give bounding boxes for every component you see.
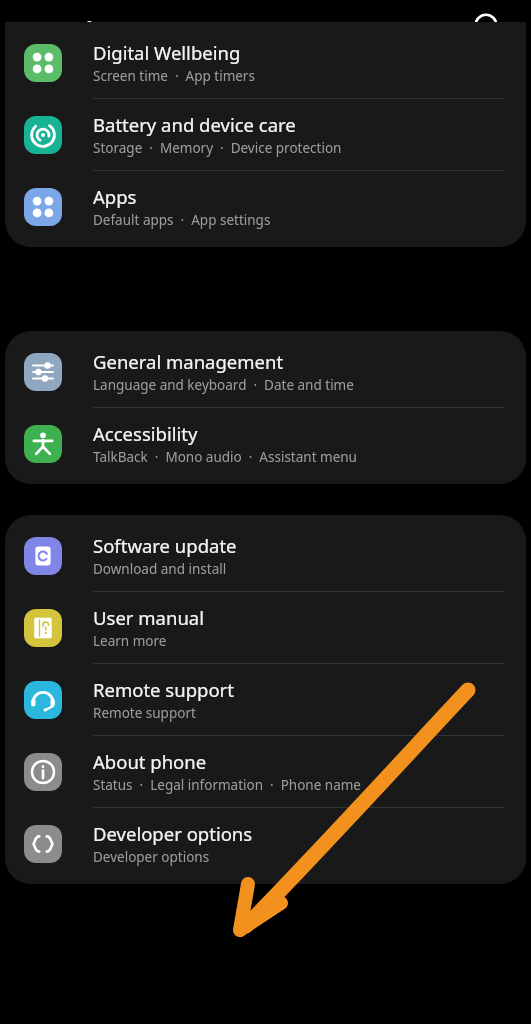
button[interactable]: General management <box>5 336 526 407</box>
staticText: Apps <box>93 184 137 209</box>
staticText: Battery and device care <box>93 112 296 137</box>
button[interactable]: Digital Wellbeing <box>5 27 526 98</box>
staticText: Storage · Memory · Device protection <box>93 139 342 157</box>
button[interactable]: Developer options <box>5 808 526 879</box>
staticText: Learn more <box>93 632 167 650</box>
staticText: Accessibility <box>93 421 198 446</box>
staticText: Remote support <box>93 677 234 702</box>
button[interactable]: Accessibility <box>5 408 526 479</box>
button[interactable]: Search <box>462 3 510 51</box>
staticText: Language and keyboard · Date and time <box>93 376 354 394</box>
staticText: Developer options <box>93 848 210 866</box>
button[interactable]: About phone <box>5 736 526 807</box>
button[interactable]: Software update <box>5 520 526 591</box>
staticText: Screen time · App timers <box>93 67 255 85</box>
staticText: Settings <box>33 14 140 49</box>
staticText: Digital Wellbeing <box>93 40 241 65</box>
staticText: TalkBack · Mono audio · Assistant menu <box>93 448 357 466</box>
staticText: User manual <box>93 605 204 630</box>
staticText: About phone <box>93 749 207 774</box>
button[interactable]: Apps <box>5 171 526 242</box>
staticText: General management <box>93 349 284 374</box>
button[interactable]: Remote support <box>5 664 526 735</box>
staticText: Remote support <box>93 704 196 722</box>
staticText: Developer options <box>93 821 253 846</box>
staticText: Software update <box>93 533 237 558</box>
button[interactable]: Battery and device care <box>5 99 526 170</box>
staticText: Default apps · App settings <box>93 211 271 229</box>
staticText: Download and install <box>93 560 227 578</box>
staticText: Status · Legal information · Phone name <box>93 776 361 794</box>
button[interactable]: User manual <box>5 592 526 663</box>
